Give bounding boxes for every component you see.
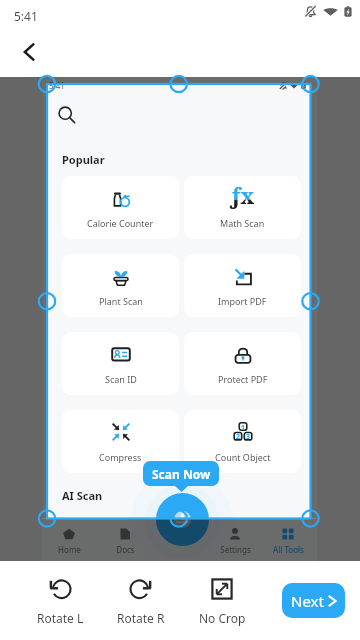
staticText: Rotate L: [37, 610, 84, 626]
staticText: AI Scan: [62, 488, 103, 503]
staticText: Protect PDF: [218, 373, 268, 385]
staticText: Compress: [99, 451, 142, 463]
button[interactable]: Docs: [101, 527, 149, 555]
staticText: 5:41: [14, 8, 38, 24]
button[interactable]: Compress: [62, 410, 179, 473]
button[interactable]: Protect PDF: [184, 332, 301, 395]
staticText: Settings: [220, 544, 251, 555]
button[interactable]: ƒx: [184, 176, 301, 239]
button[interactable]: Calorie Counter: [62, 176, 179, 239]
button[interactable]: Next: [282, 583, 345, 618]
button[interactable]: All Tools: [264, 527, 312, 555]
staticText: Popular: [62, 152, 105, 167]
button[interactable]: Rotate R: [105, 577, 177, 626]
staticText: Home: [58, 544, 81, 555]
staticText: Math Scan: [220, 217, 265, 229]
button[interactable]: Scan ID: [62, 332, 179, 395]
button[interactable]: Back: [6, 28, 54, 76]
button[interactable]: Rotate L: [24, 577, 96, 626]
staticText: Plant Scan: [99, 295, 143, 307]
staticText: 5:41: [49, 80, 65, 91]
staticText: All Tools: [273, 544, 304, 555]
button[interactable]: No Crop: [186, 577, 258, 626]
button[interactable]: 1: [184, 410, 301, 473]
button[interactable]: Home: [45, 527, 93, 555]
staticText: 3: [246, 432, 251, 440]
button[interactable]: Import PDF: [184, 254, 301, 317]
staticText: Count Object: [215, 451, 271, 463]
staticText: 2: [236, 432, 241, 440]
button[interactable]: Plant Scan: [62, 254, 179, 317]
staticText: Scan ID: [105, 373, 137, 385]
staticText: 1: [241, 423, 246, 431]
button[interactable]: Settings: [211, 527, 259, 555]
staticText: No Crop: [199, 610, 246, 626]
staticText: Next: [291, 591, 324, 611]
staticText: Scan Now: [152, 466, 211, 482]
staticText: Rotate R: [117, 610, 165, 626]
staticText: Calorie Counter: [87, 217, 154, 229]
staticText: ƒx: [230, 182, 255, 211]
staticText: Import PDF: [218, 295, 267, 307]
button[interactable]: Scan Now: [143, 461, 219, 486]
button[interactable]: Scan: [156, 493, 209, 546]
staticText: Docs: [116, 544, 135, 555]
